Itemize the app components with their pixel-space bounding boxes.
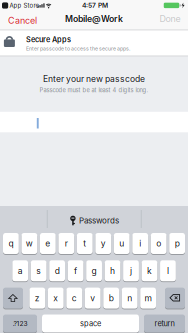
staticText: n [127, 293, 132, 303]
button[interactable]: return [144, 314, 185, 333]
button[interactable]: e [40, 232, 56, 254]
staticText: App Store [10, 2, 39, 9]
button[interactable]: Delete [165, 287, 185, 309]
button[interactable]: Passwords [69, 215, 119, 225]
staticText: a [18, 266, 23, 276]
staticText: Passcode must be at least 4 digits long. [39, 87, 148, 94]
button[interactable]: k [142, 260, 157, 282]
staticText: x [53, 293, 58, 303]
button[interactable]: .?123 [3, 314, 37, 333]
staticText: y [101, 238, 106, 249]
button[interactable]: j [123, 260, 139, 282]
button[interactable]: h [105, 260, 120, 282]
staticText: t [83, 238, 86, 249]
button[interactable]: a [12, 260, 28, 282]
button[interactable]: d [49, 260, 65, 282]
staticText: Passwords [79, 216, 119, 225]
staticText: return [154, 319, 174, 328]
button[interactable]: q [3, 232, 19, 254]
staticText: e [45, 238, 50, 249]
button[interactable]: b [103, 287, 119, 309]
staticText: r [65, 238, 68, 249]
staticText: s [36, 266, 41, 276]
staticText: g [92, 266, 97, 276]
staticText: o [156, 238, 161, 249]
button[interactable]: w [21, 232, 37, 254]
staticText: j [130, 266, 132, 276]
staticText: Enter passcode to access the secure apps… [26, 45, 130, 52]
button[interactable]: c [66, 287, 82, 309]
staticText: Secure Apps [26, 35, 71, 44]
staticText: m [145, 293, 152, 303]
staticText: f [74, 266, 77, 276]
button[interactable]: y [95, 232, 111, 254]
staticText: l [167, 266, 169, 276]
button[interactable]: Done [159, 13, 180, 24]
staticText: i [139, 238, 141, 249]
staticText: d [55, 266, 60, 276]
staticText: b [109, 293, 114, 303]
button[interactable]: z [29, 287, 45, 309]
staticText: .?123 [12, 319, 27, 328]
button[interactable]: Cancel [8, 15, 37, 26]
button[interactable]: x [48, 287, 64, 309]
button[interactable]: s [31, 260, 47, 282]
button[interactable]: Back to App Store [2, 2, 39, 9]
button[interactable]: m [140, 287, 156, 309]
button[interactable]: o [151, 232, 167, 254]
button[interactable]: f [68, 260, 83, 282]
staticText: Mobile@Work [65, 14, 123, 24]
button[interactable]: i [132, 232, 148, 254]
staticText: Cancel [8, 15, 37, 26]
button[interactable]: v [85, 287, 101, 309]
staticText: h [110, 266, 115, 276]
button[interactable]: t [77, 232, 93, 254]
staticText: q [8, 238, 13, 249]
staticText: Enter your new passcode [43, 74, 145, 84]
staticText: 4:57 PM [82, 1, 108, 9]
button[interactable]: n [122, 287, 138, 309]
staticText: Done [159, 13, 180, 24]
button[interactable]: l [160, 260, 176, 282]
button[interactable]: r [58, 232, 74, 254]
button[interactable]: space [42, 314, 139, 333]
button[interactable]: u [114, 232, 130, 254]
staticText: z [35, 293, 40, 303]
staticText: v [90, 293, 95, 303]
staticText: c [72, 293, 77, 303]
staticText: space [80, 319, 101, 328]
staticText: k [147, 266, 152, 276]
button[interactable]: p [169, 232, 185, 254]
button[interactable]: Shift [3, 287, 23, 309]
staticText: u [119, 238, 124, 249]
button[interactable]: g [86, 260, 102, 282]
staticText: p [175, 238, 180, 249]
staticText: w [26, 238, 33, 249]
